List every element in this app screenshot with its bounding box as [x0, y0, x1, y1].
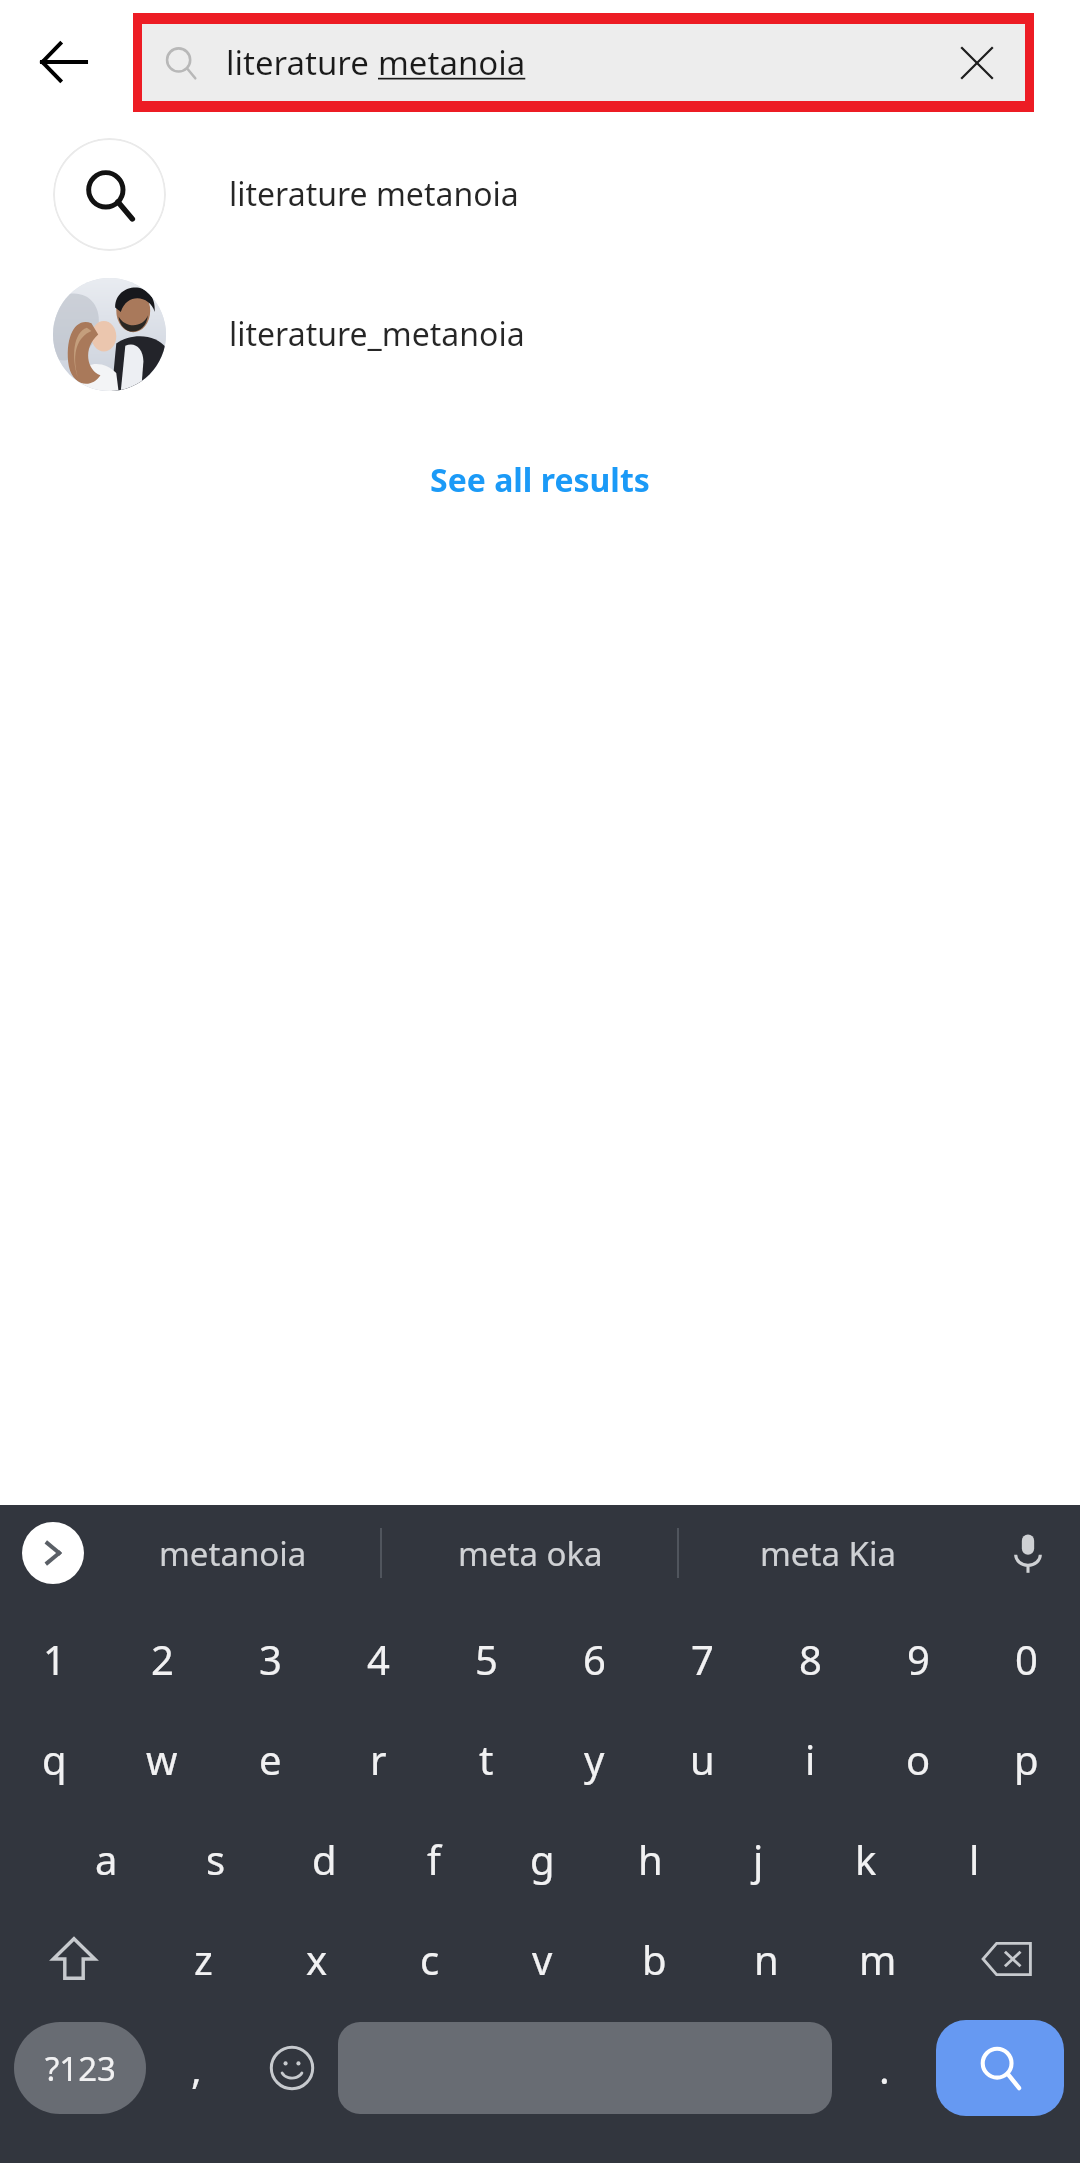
staticText: b [642, 1932, 667, 1986]
staticText: . [879, 2041, 890, 2095]
staticText: p [1014, 1732, 1039, 1786]
button[interactable]: t [432, 1709, 540, 1809]
button[interactable]: e [216, 1709, 324, 1809]
button[interactable]: p [972, 1709, 1080, 1809]
button[interactable]: Space [338, 2022, 832, 2114]
button[interactable]: 9 [864, 1609, 972, 1709]
button[interactable]: c [373, 1909, 486, 2009]
staticText: 4 [367, 1632, 390, 1686]
staticText: See all results [430, 458, 650, 502]
staticText: s [206, 1832, 226, 1886]
button[interactable]: , [146, 2009, 246, 2127]
staticText: c [420, 1932, 440, 1986]
button[interactable]: l [920, 1809, 1028, 1909]
button[interactable]: z [147, 1909, 260, 2009]
staticText: h [638, 1832, 663, 1886]
staticText: o [906, 1732, 931, 1786]
staticText: y [584, 1732, 605, 1786]
button[interactable]: q [0, 1709, 108, 1809]
staticText: z [194, 1932, 213, 1986]
button[interactable]: 5 [432, 1609, 540, 1709]
staticText: d [312, 1832, 337, 1886]
button[interactable]: u [648, 1709, 756, 1809]
button[interactable]: h [596, 1809, 704, 1909]
staticText: g [530, 1832, 555, 1886]
button[interactable]: 7 [648, 1609, 756, 1709]
button[interactable]: g [488, 1809, 596, 1909]
button[interactable]: 2 [108, 1609, 216, 1709]
button[interactable]: Backspace [934, 1909, 1080, 2009]
staticText: m [859, 1932, 897, 1986]
button[interactable]: Voice input [976, 1505, 1080, 1601]
button[interactable]: 3 [216, 1609, 324, 1709]
staticText: metanoia [378, 40, 526, 85]
button[interactable]: b [598, 1909, 710, 2009]
button[interactable]: 8 [756, 1609, 864, 1709]
button[interactable]: ?123 [14, 2022, 146, 2114]
button[interactable]: f [379, 1809, 488, 1909]
staticText: 9 [907, 1632, 930, 1686]
staticText: u [690, 1732, 715, 1786]
button[interactable]: k [812, 1809, 920, 1909]
staticText: k [855, 1832, 877, 1886]
button[interactable]: 1 [0, 1609, 108, 1709]
button[interactable]: literature metanoia [0, 124, 1080, 264]
staticText: meta oka [458, 1531, 603, 1576]
staticText: q [42, 1732, 67, 1786]
button[interactable]: v [486, 1909, 598, 2009]
staticText: metanoia [159, 1531, 307, 1576]
staticText: l [969, 1832, 980, 1886]
button[interactable]: literature [142, 24, 1025, 101]
button[interactable]: s [161, 1809, 270, 1909]
staticText: meta Kia [760, 1531, 896, 1576]
staticText: 2 [151, 1632, 174, 1686]
button[interactable]: 4 [324, 1609, 432, 1709]
staticText: a [95, 1832, 118, 1886]
staticText: j [753, 1832, 764, 1886]
staticText: literature metanoia [229, 172, 519, 216]
staticText: f [427, 1832, 441, 1886]
staticText: v [532, 1932, 553, 1986]
button[interactable]: Emoji [246, 2009, 338, 2127]
staticText: x [306, 1932, 328, 1986]
button[interactable]: j [704, 1809, 812, 1909]
button[interactable]: meta Kia [679, 1505, 976, 1601]
staticText: literature_metanoia [229, 312, 525, 356]
staticText: 6 [583, 1632, 606, 1686]
staticText: literature [226, 40, 378, 85]
button[interactable]: Clear query [941, 27, 1013, 99]
staticText: 8 [799, 1632, 822, 1686]
button[interactable]: w [108, 1709, 216, 1809]
button[interactable]: a [52, 1809, 161, 1909]
button[interactable]: d [270, 1809, 379, 1909]
staticText: w [146, 1732, 178, 1786]
staticText: t [479, 1732, 494, 1786]
staticText: r [370, 1732, 387, 1786]
staticText: 0 [1015, 1632, 1038, 1686]
staticText: 7 [691, 1632, 714, 1686]
staticText: , [191, 2041, 202, 2095]
button[interactable]: n [710, 1909, 822, 2009]
button[interactable]: See all results [390, 442, 690, 518]
staticText: e [259, 1732, 282, 1786]
button[interactable]: y [540, 1709, 648, 1809]
button[interactable]: Back [10, 8, 118, 116]
staticText: 3 [259, 1632, 282, 1686]
button[interactable]: . [832, 2009, 936, 2127]
button[interactable]: metanoia [84, 1505, 382, 1601]
staticText: n [754, 1932, 779, 1986]
button[interactable]: x [260, 1909, 373, 2009]
button[interactable]: literature_metanoia [0, 264, 1080, 404]
button[interactable]: meta oka [382, 1505, 679, 1601]
button[interactable]: More suggestions [22, 1522, 84, 1584]
button[interactable]: m [822, 1909, 934, 2009]
button[interactable]: 0 [972, 1609, 1080, 1709]
button[interactable]: r [324, 1709, 432, 1809]
button[interactable]: Search [936, 2020, 1064, 2116]
staticText: i [805, 1732, 816, 1786]
staticText: 1 [43, 1632, 66, 1686]
button[interactable]: 6 [540, 1609, 648, 1709]
button[interactable]: i [756, 1709, 864, 1809]
button[interactable]: o [864, 1709, 972, 1809]
button[interactable]: Shift [0, 1909, 147, 2009]
